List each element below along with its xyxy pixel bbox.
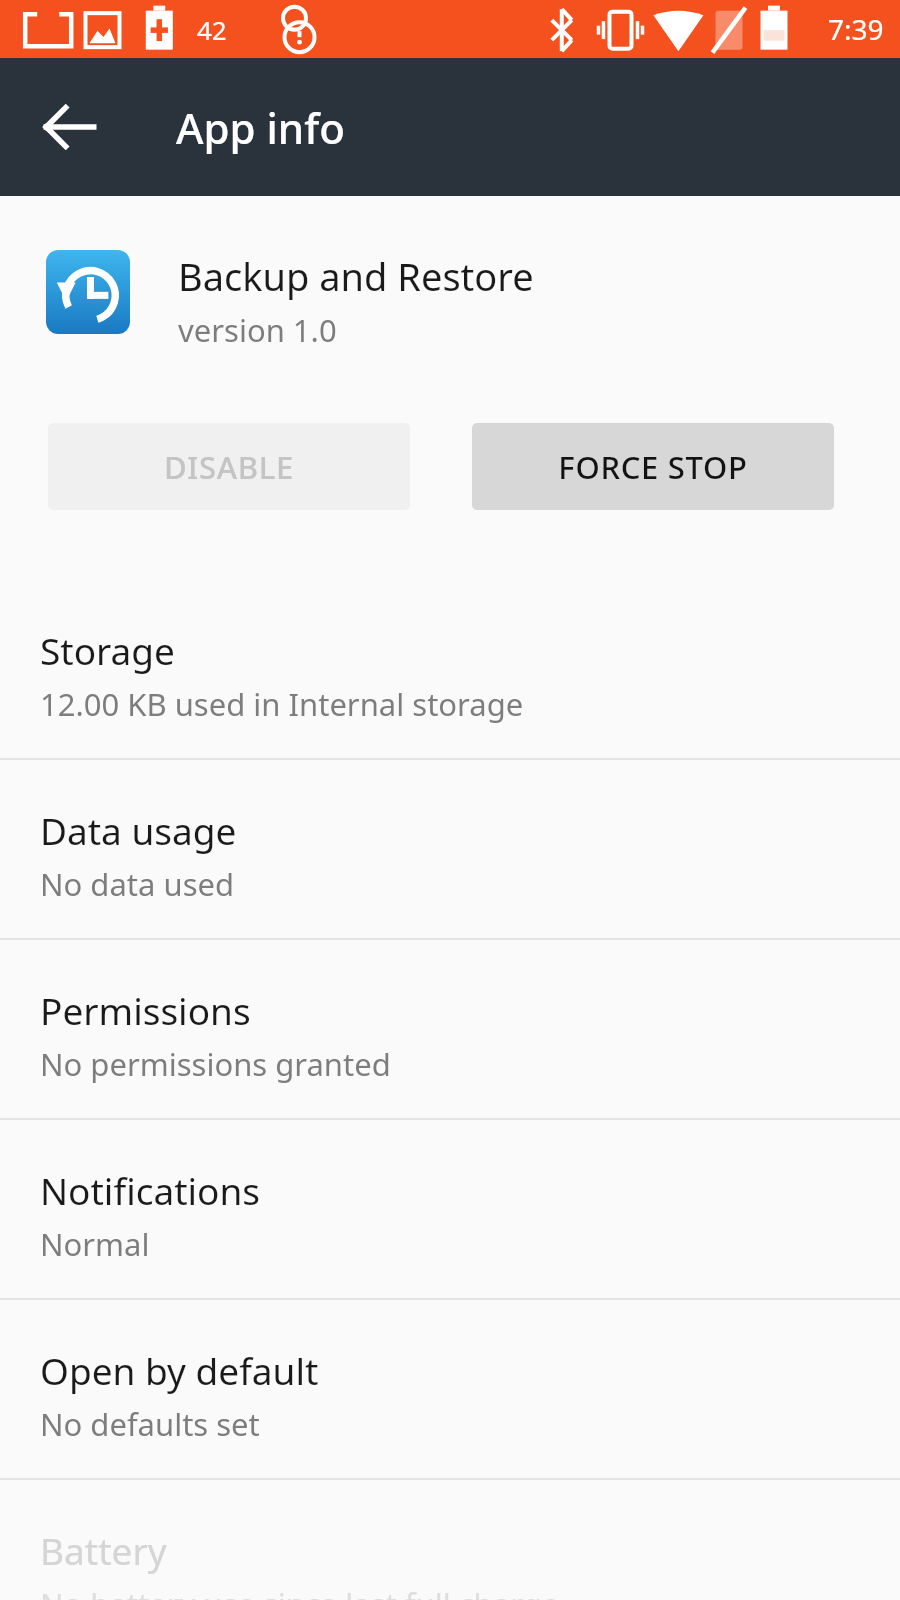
- button[interactable]: DISABLE: [48, 423, 410, 510]
- staticText: No battery use since last full charge: [40, 1583, 560, 1600]
- staticText: version 1.0: [178, 309, 337, 351]
- button[interactable]: Notifications: [0, 1120, 900, 1298]
- staticText: Storage: [40, 625, 175, 675]
- button[interactable]: Back: [22, 79, 118, 175]
- button[interactable]: Open by default: [0, 1300, 900, 1478]
- staticText: App info: [176, 99, 345, 156]
- staticText: 12.00 KB used in Internal storage: [40, 683, 524, 725]
- staticText: FORCE STOP: [558, 446, 748, 488]
- staticText: 7:39: [828, 10, 884, 48]
- staticText: Battery: [40, 1525, 167, 1575]
- staticText: Data usage: [40, 805, 237, 855]
- button[interactable]: FORCE STOP: [472, 423, 834, 510]
- staticText: 42: [197, 12, 227, 47]
- button[interactable]: Battery: [0, 1480, 900, 1600]
- button[interactable]: Data usage: [0, 760, 900, 938]
- staticText: Permissions: [40, 985, 251, 1035]
- staticText: No data used: [40, 863, 235, 905]
- staticText: Open by default: [40, 1345, 319, 1395]
- staticText: No permissions granted: [40, 1043, 391, 1085]
- staticText: Normal: [40, 1223, 150, 1265]
- button[interactable]: Permissions: [0, 940, 900, 1118]
- staticText: DISABLE: [164, 446, 294, 488]
- button[interactable]: Storage: [0, 580, 900, 758]
- staticText: No defaults set: [40, 1403, 260, 1445]
- staticText: Backup and Restore: [178, 250, 534, 302]
- staticText: Notifications: [40, 1165, 261, 1215]
